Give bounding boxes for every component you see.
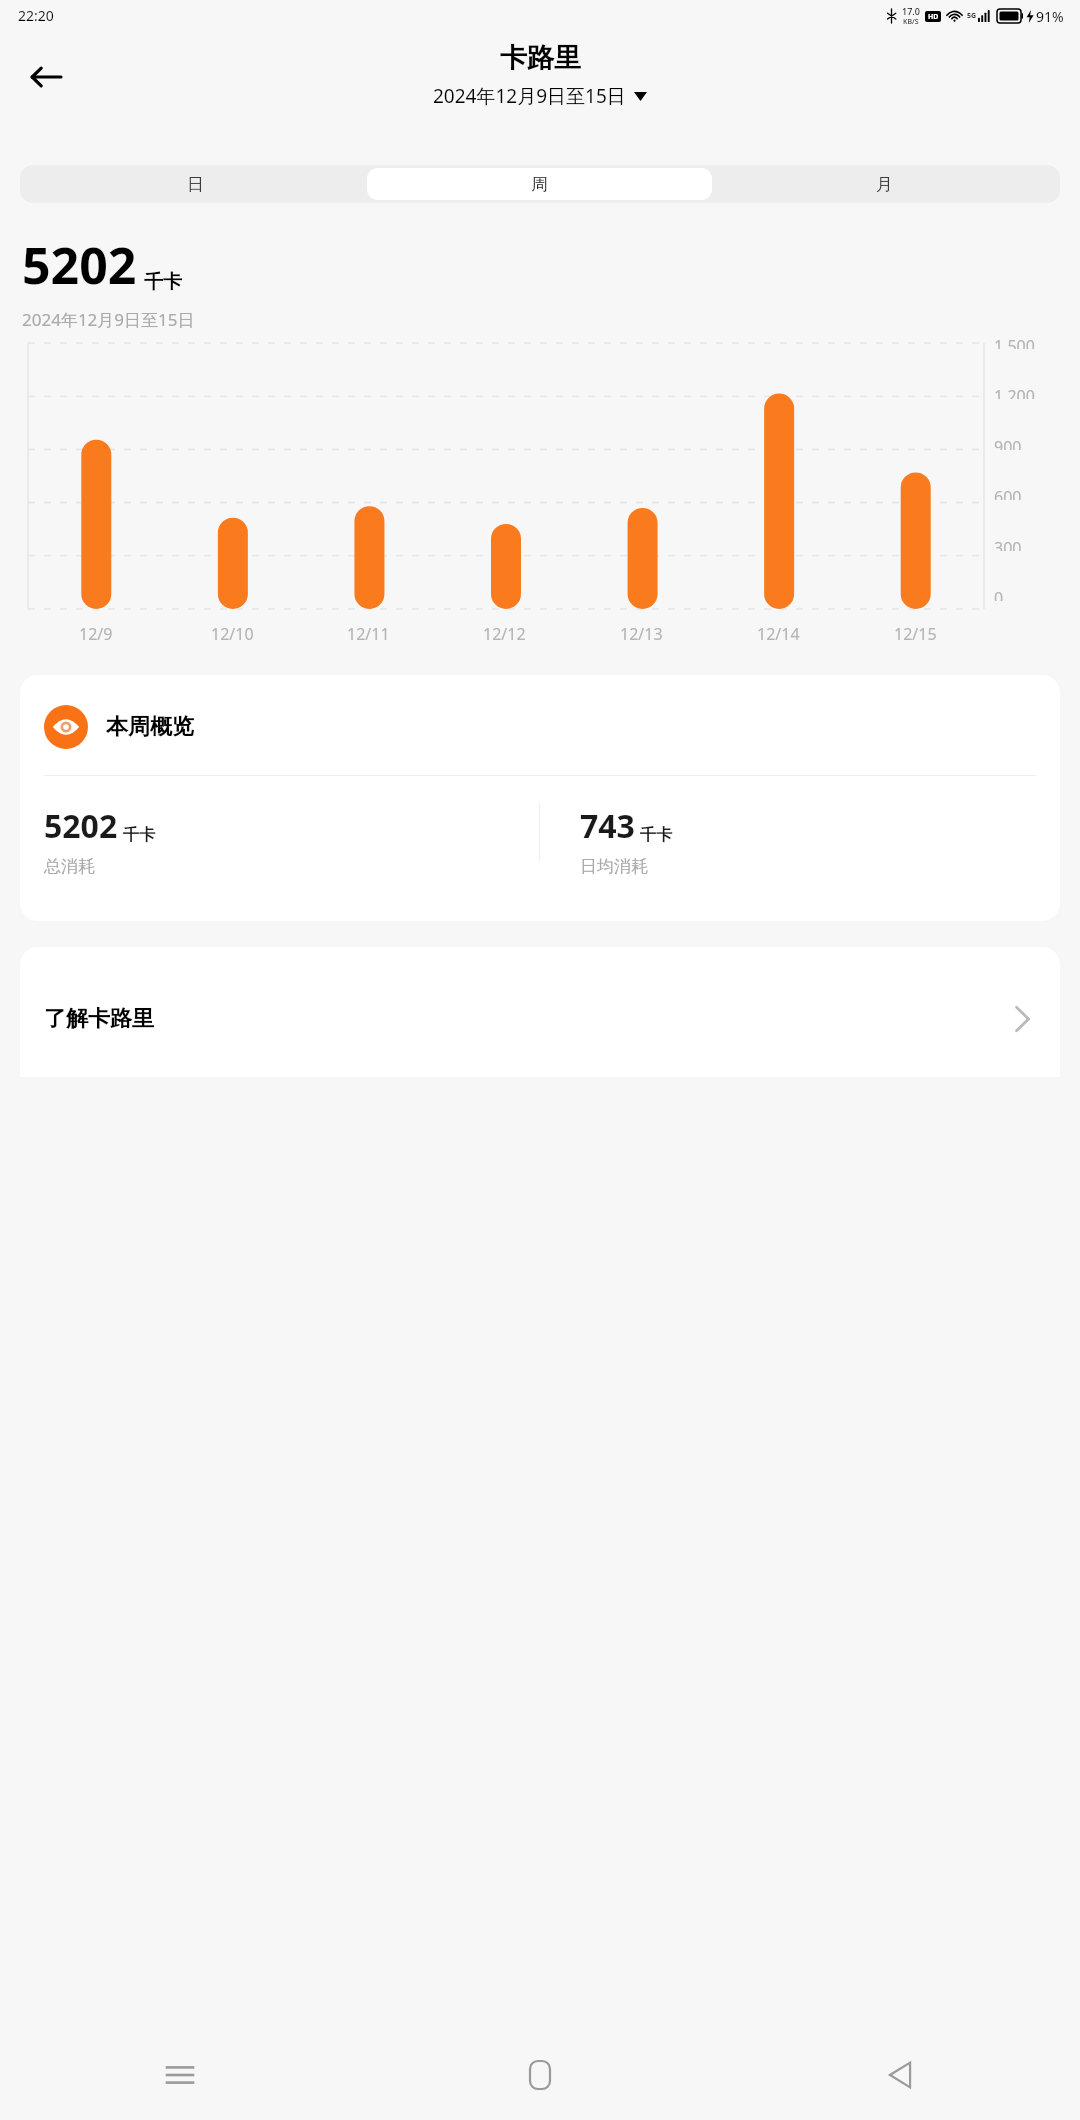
button[interactable]: 了解卡路里 xyxy=(20,947,1060,1077)
staticText: KB/S xyxy=(903,17,919,27)
staticText: 卡路里 xyxy=(500,41,581,75)
staticText: 300 xyxy=(994,537,1022,551)
staticText: 900 xyxy=(994,436,1022,450)
staticText: 千卡 xyxy=(123,825,155,845)
staticText: 千卡 xyxy=(640,825,672,845)
staticText: 17.0 xyxy=(902,5,920,17)
staticText: 12/12 xyxy=(483,623,526,645)
staticText: 0 xyxy=(994,587,1004,601)
staticText: 1,500 xyxy=(994,335,1035,349)
staticText: 日 xyxy=(187,174,204,195)
staticText: 月 xyxy=(876,174,893,195)
button[interactable]: 周 xyxy=(367,168,712,200)
button[interactable]: 日 xyxy=(23,168,367,200)
staticText: HD xyxy=(928,12,939,22)
staticText: 5G xyxy=(967,11,977,21)
staticText: 5202 xyxy=(44,804,118,848)
staticText: 2024年12月9日至15日 xyxy=(433,83,626,109)
button[interactable]: Back xyxy=(18,49,74,105)
staticText: 了解卡路里 xyxy=(44,1005,154,1033)
staticText: 12/14 xyxy=(757,623,800,645)
staticText: 743 xyxy=(580,804,635,848)
staticText: 本周概览 xyxy=(106,713,194,741)
button[interactable]: 本周概览 xyxy=(20,675,1060,921)
button[interactable]: Home xyxy=(360,2030,720,2120)
staticText: 600 xyxy=(994,486,1022,500)
staticText: 2024年12月9日至15日 xyxy=(22,308,195,331)
button[interactable]: Recents xyxy=(0,2030,360,2120)
staticText: 22:20 xyxy=(18,6,54,25)
staticText: 1,200 xyxy=(994,385,1035,399)
staticText: 91% xyxy=(1036,7,1064,26)
staticText: 5202 xyxy=(22,231,137,299)
staticText: 12/9 xyxy=(79,623,113,645)
staticText: 日均消耗 xyxy=(580,856,648,877)
staticText: 千卡 xyxy=(144,270,182,294)
staticText: 周 xyxy=(531,174,548,195)
staticText: 12/13 xyxy=(620,623,663,645)
staticText: 12/11 xyxy=(347,623,390,645)
button[interactable]: 2024年12月9日至15日 xyxy=(429,81,651,111)
staticText: 12/10 xyxy=(211,623,254,645)
button[interactable]: 月 xyxy=(712,168,1057,200)
staticText: 12/15 xyxy=(894,623,937,645)
button[interactable]: Back xyxy=(720,2030,1080,2120)
staticText: 总消耗 xyxy=(44,856,95,877)
